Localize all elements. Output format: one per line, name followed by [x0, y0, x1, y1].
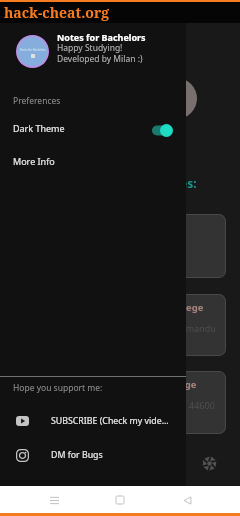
staticText: Happy Studying! [57, 42, 123, 54]
staticText: Your Courses: [115, 175, 197, 191]
staticText: Developed by Milan :) [57, 53, 143, 65]
staticText: Dark Theme [13, 122, 65, 134]
staticText: Notes for Bachelors [20, 48, 46, 52]
staticText: Notes for Bachelors [57, 31, 146, 43]
button[interactable]: Amrit Science College [14, 371, 226, 434]
button[interactable]: SUBSCRIBE (Check my vide... [0, 408, 186, 434]
button[interactable]: Back [174, 487, 200, 513]
button[interactable]: Camera [197, 451, 221, 475]
button[interactable]: DM for Bugs [0, 442, 186, 468]
staticText: DM for Bugs [51, 449, 103, 461]
button[interactable]: Dark Theme [0, 115, 186, 141]
staticText: More Info [13, 155, 55, 167]
button[interactable]: More Info [0, 148, 186, 174]
button[interactable]: Home [107, 487, 133, 513]
staticText: Hope you support me: [13, 382, 103, 394]
staticText: Preferences [13, 95, 61, 107]
staticText: Lainchaur, Kathmandu 44600 [92, 399, 215, 411]
button[interactable]: Trichandra College [14, 294, 226, 356]
staticText: SUBSCRIBE (Check my vide... [51, 415, 169, 427]
button[interactable]: Recents [41, 487, 67, 513]
staticText: hack-cheat.org [4, 3, 110, 22]
staticText: Amrit Science College [94, 378, 197, 391]
staticText: Trichandra College [115, 301, 204, 314]
button[interactable]: Padmakanya College [14, 214, 226, 278]
staticText: Ghantaghar, Kathmandu [112, 322, 216, 334]
